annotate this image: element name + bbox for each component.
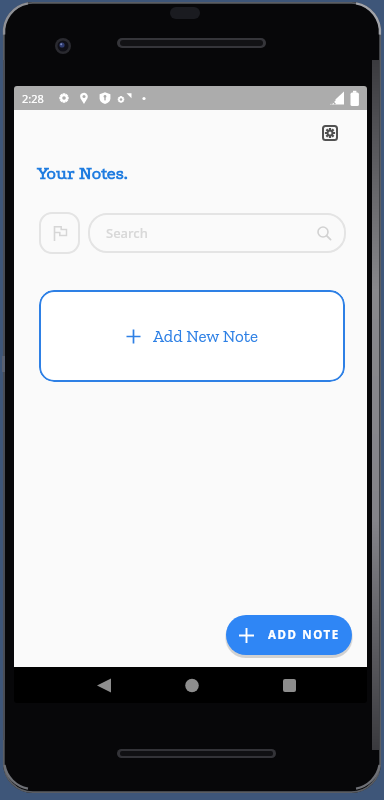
button[interactable] [14, 667, 131, 703]
button[interactable]: ADD NOTE [226, 615, 352, 655]
staticText: Your Notes. [37, 164, 128, 184]
button[interactable]: Add New Note [39, 290, 345, 382]
staticText: 2:28 [22, 91, 44, 106]
button[interactable] [322, 125, 338, 141]
button[interactable] [131, 667, 249, 703]
button[interactable] [39, 212, 80, 254]
staticText: Search [106, 224, 148, 242]
staticText: Add New Note [153, 326, 259, 346]
button[interactable]: Search [88, 213, 346, 253]
staticText: ADD NOTE [268, 627, 340, 643]
button[interactable] [249, 667, 367, 703]
